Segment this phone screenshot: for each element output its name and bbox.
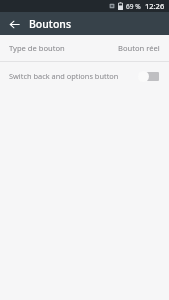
button[interactable]: Type de bouton [0,35,169,61]
staticText: Boutons [29,17,71,31]
staticText: 12:26 [145,1,165,11]
staticText: Bouton réel [118,43,160,53]
button[interactable]: Back [4,14,24,34]
staticText: Type de bouton [9,43,65,53]
button[interactable]: Switch back and options button toggle [138,69,160,83]
button[interactable]: Switch back and options button [0,62,169,89]
staticText: 69 % [126,2,141,11]
staticText: Switch back and options button [9,71,119,81]
